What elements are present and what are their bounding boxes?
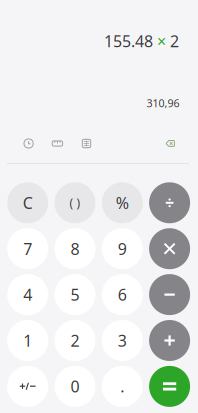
staticText: ( ) — [69, 195, 80, 211]
staticText: 310,96 — [146, 96, 179, 110]
button[interactable]: Delete — [164, 138, 176, 148]
button[interactable]: 8 — [54, 228, 95, 269]
staticText: 155.48 — [104, 30, 157, 52]
button[interactable]: ( ) — [54, 182, 95, 223]
button[interactable]: 9 — [102, 228, 143, 269]
staticText: 7 — [23, 238, 32, 259]
staticText: 1 — [23, 330, 32, 351]
button[interactable]: Unit converter — [51, 137, 63, 149]
staticText: 6 — [118, 284, 127, 305]
button[interactable]: C — [7, 182, 48, 223]
staticText: 2 — [166, 30, 179, 52]
button[interactable]: Toggle sign — [7, 366, 48, 407]
button[interactable]: % — [102, 182, 143, 223]
button[interactable]: 5 — [54, 274, 95, 315]
button[interactable]: 7 — [7, 228, 48, 269]
staticText: . — [120, 376, 124, 397]
staticText: 4 — [23, 284, 32, 305]
staticText: 9 — [118, 238, 127, 259]
button[interactable]: Equals — [149, 366, 190, 407]
button[interactable]: 1 — [7, 320, 48, 361]
button[interactable]: 6 — [102, 274, 143, 315]
button[interactable]: . — [102, 366, 143, 407]
staticText: 0 — [70, 376, 79, 397]
button[interactable]: Divide — [149, 182, 190, 223]
button[interactable]: 4 — [7, 274, 48, 315]
button[interactable]: Date calculator — [80, 137, 92, 149]
button[interactable]: 2 — [54, 320, 95, 361]
staticText: 5 — [70, 284, 79, 305]
staticText: 2 — [70, 330, 79, 351]
staticText: × — [157, 30, 166, 52]
button[interactable]: Subtract — [149, 274, 190, 315]
staticText: C — [23, 192, 33, 213]
staticText: 8 — [70, 238, 79, 259]
button[interactable]: 0 — [54, 366, 95, 407]
button[interactable]: 3 — [102, 320, 143, 361]
button[interactable]: Add — [149, 320, 190, 361]
button[interactable]: History — [23, 137, 35, 149]
button[interactable]: Multiply — [149, 228, 190, 269]
staticText: 3 — [118, 330, 127, 351]
staticText: % — [116, 192, 129, 213]
